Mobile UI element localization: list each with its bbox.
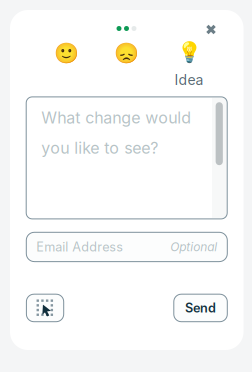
staticText: Optional <box>170 240 217 254</box>
staticText: 💡 <box>176 40 201 64</box>
button[interactable]: Capture screenshot <box>26 294 64 322</box>
staticText: Send <box>185 300 216 316</box>
staticText: What change would <box>41 108 191 127</box>
staticText: 😞 <box>113 41 138 65</box>
button[interactable]: Reaction <box>38 40 94 86</box>
staticText: Idea <box>174 71 203 88</box>
button[interactable]: Close <box>200 18 222 40</box>
button[interactable]: Email Address <box>26 232 227 262</box>
staticText: 🙂 <box>53 41 78 65</box>
staticText: Email Address <box>36 239 123 255</box>
button[interactable]: Idea <box>161 39 217 85</box>
button[interactable]: Send <box>174 294 227 322</box>
button[interactable]: Reaction <box>98 40 154 86</box>
staticText: you like to see? <box>41 138 158 158</box>
